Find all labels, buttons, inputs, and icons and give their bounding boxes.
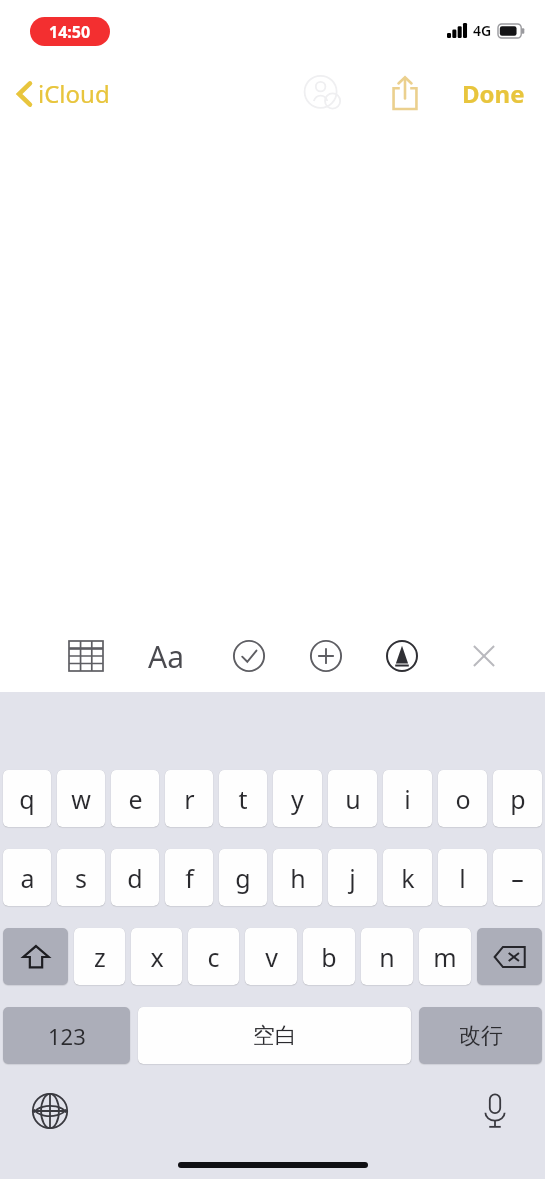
button[interactable]: v: [245, 928, 297, 985]
staticText: u: [345, 782, 361, 816]
staticText: q: [19, 782, 35, 816]
button[interactable]: d: [111, 849, 159, 906]
button[interactable]: Close: [460, 632, 508, 680]
button[interactable]: Checklist: [225, 632, 273, 680]
staticText: 123: [48, 1021, 86, 1051]
button[interactable]: iCloud: [12, 71, 116, 116]
button[interactable]: t: [219, 770, 267, 827]
button[interactable]: p: [493, 770, 542, 827]
staticText: iCloud: [38, 77, 110, 110]
staticText: m: [433, 940, 457, 974]
button[interactable]: n: [361, 928, 413, 985]
staticText: 4G: [473, 21, 492, 40]
button[interactable]: Markup: [378, 632, 426, 680]
staticText: e: [128, 782, 143, 816]
staticText: l: [459, 861, 466, 895]
button[interactable]: b: [303, 928, 355, 985]
button[interactable]: o: [438, 770, 487, 827]
button[interactable]: x: [131, 928, 182, 985]
button[interactable]: Switch keyboard: [24, 1085, 76, 1137]
button[interactable]: r: [165, 770, 213, 827]
button[interactable]: g: [219, 849, 267, 906]
button[interactable]: 123: [3, 1007, 130, 1064]
staticText: y: [291, 782, 304, 816]
button[interactable]: m: [419, 928, 471, 985]
button[interactable]: z: [74, 928, 125, 985]
staticText: 空白: [253, 1022, 297, 1050]
button[interactable]: i: [383, 770, 432, 827]
button[interactable]: Add People: [296, 66, 350, 120]
button[interactable]: a: [3, 849, 51, 906]
staticText: Done: [462, 77, 525, 110]
button[interactable]: e: [111, 770, 159, 827]
staticText: f: [185, 861, 194, 895]
button[interactable]: c: [188, 928, 239, 985]
staticText: b: [321, 940, 337, 974]
button[interactable]: q: [3, 770, 51, 827]
staticText: i: [404, 782, 411, 816]
staticText: –: [511, 861, 524, 895]
button[interactable]: u: [328, 770, 377, 827]
staticText: o: [455, 782, 471, 816]
staticText: g: [235, 861, 251, 895]
button[interactable]: l: [438, 849, 487, 906]
button[interactable]: Share: [378, 66, 432, 120]
button[interactable]: –: [493, 849, 542, 906]
button[interactable]: y: [273, 770, 322, 827]
staticText: d: [127, 861, 143, 895]
staticText: j: [349, 861, 356, 895]
staticText: v: [265, 940, 278, 974]
button[interactable]: w: [57, 770, 105, 827]
button[interactable]: 改行: [419, 1007, 542, 1064]
staticText: k: [401, 861, 415, 895]
button[interactable]: Backspace: [477, 928, 542, 985]
button[interactable]: s: [57, 849, 105, 906]
staticText: p: [510, 782, 526, 816]
staticText: t: [238, 782, 248, 816]
button[interactable]: Format: [142, 632, 190, 680]
staticText: r: [184, 782, 195, 816]
staticText: 改行: [459, 1022, 503, 1050]
button[interactable]: j: [328, 849, 377, 906]
staticText: a: [20, 861, 35, 895]
staticText: w: [71, 782, 91, 816]
staticText: n: [379, 940, 395, 974]
staticText: s: [75, 861, 87, 895]
staticText: Aa: [148, 636, 184, 677]
button[interactable]: Add attachment: [302, 632, 350, 680]
button[interactable]: Dictation: [469, 1085, 521, 1137]
staticText: 14:50: [49, 21, 91, 43]
staticText: h: [290, 861, 306, 895]
button[interactable]: 空白: [138, 1007, 411, 1064]
staticText: x: [150, 940, 164, 974]
button[interactable]: Table: [62, 632, 110, 680]
button[interactable]: Done: [452, 69, 535, 118]
staticText: z: [94, 940, 106, 974]
staticText: c: [207, 940, 220, 974]
button[interactable]: Shift: [3, 928, 68, 985]
button[interactable]: k: [383, 849, 432, 906]
button[interactable]: f: [165, 849, 213, 906]
button[interactable]: h: [273, 849, 322, 906]
